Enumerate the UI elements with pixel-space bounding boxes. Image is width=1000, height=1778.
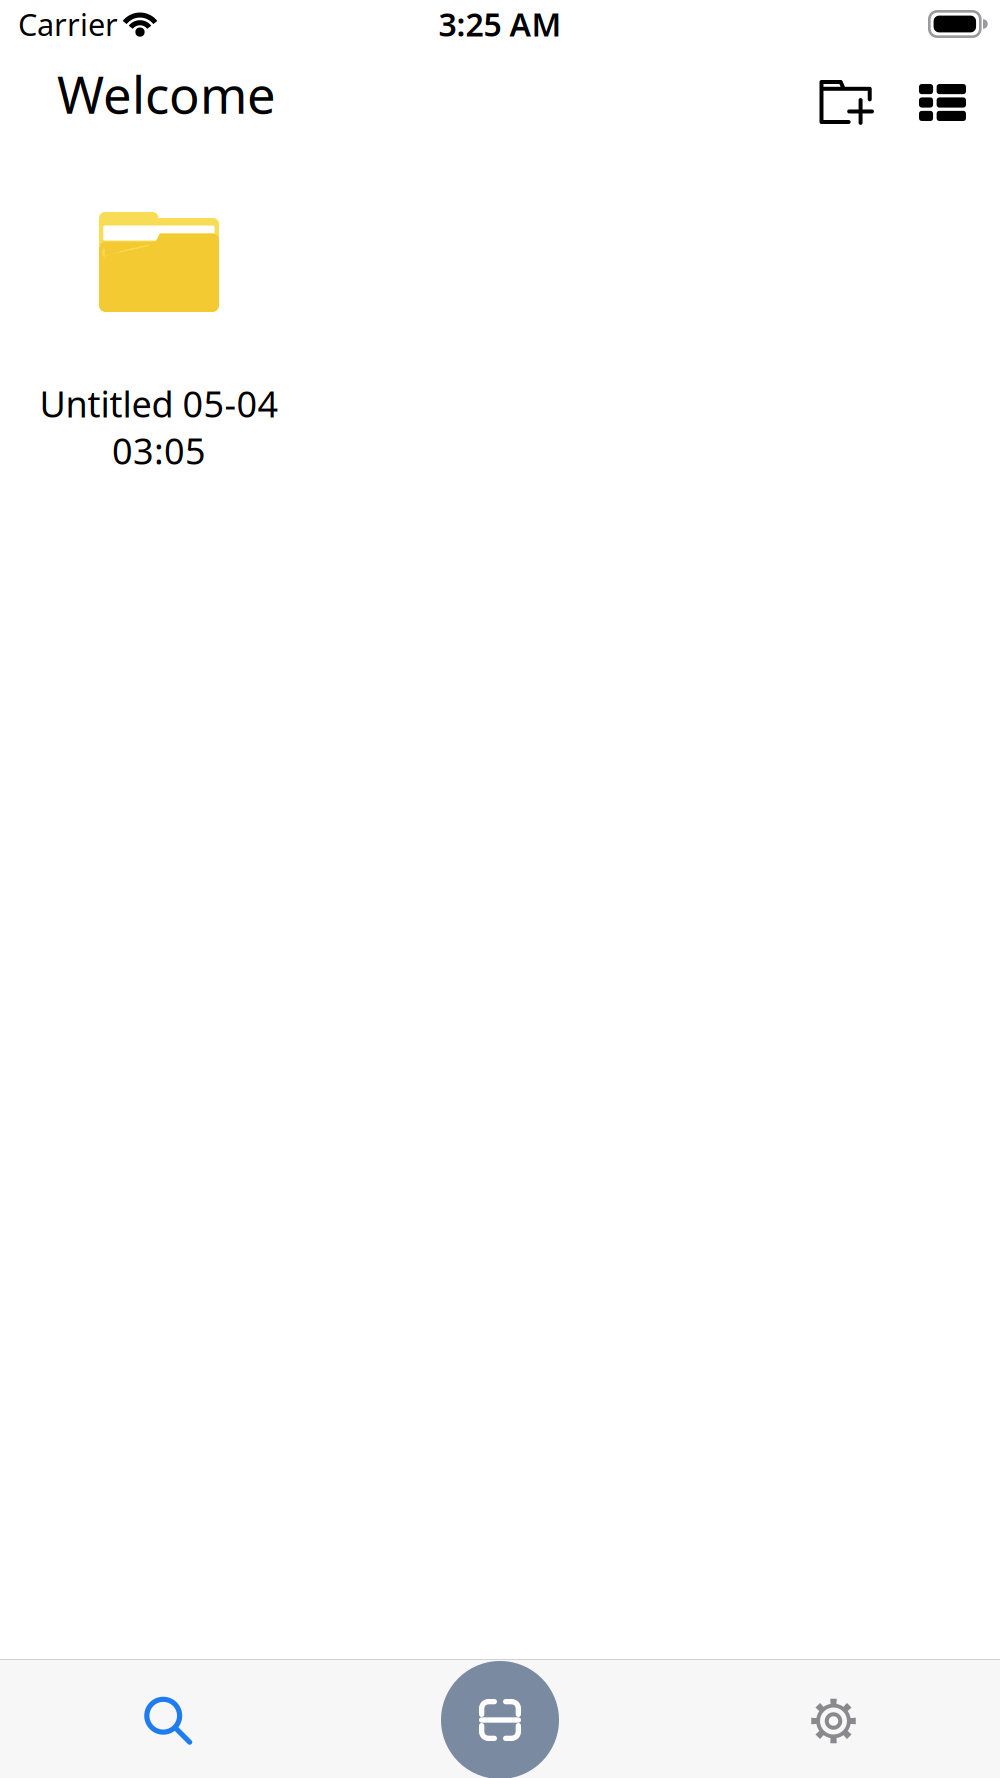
button[interactable]: List View <box>906 48 979 140</box>
staticText: Welcome <box>57 60 276 128</box>
button[interactable]: Settings <box>664 1659 1000 1778</box>
staticText: Untitled 05-04 <box>39 380 278 427</box>
staticText: 03:05 <box>112 427 206 474</box>
staticText: Carrier <box>18 4 118 44</box>
button[interactable]: Untitled 05-04 <box>0 212 318 502</box>
staticText: 3:25 AM <box>438 3 561 45</box>
button[interactable]: Search <box>0 1659 336 1778</box>
button[interactable]: New Folder <box>786 48 906 140</box>
button[interactable]: Scan <box>336 1659 664 1778</box>
